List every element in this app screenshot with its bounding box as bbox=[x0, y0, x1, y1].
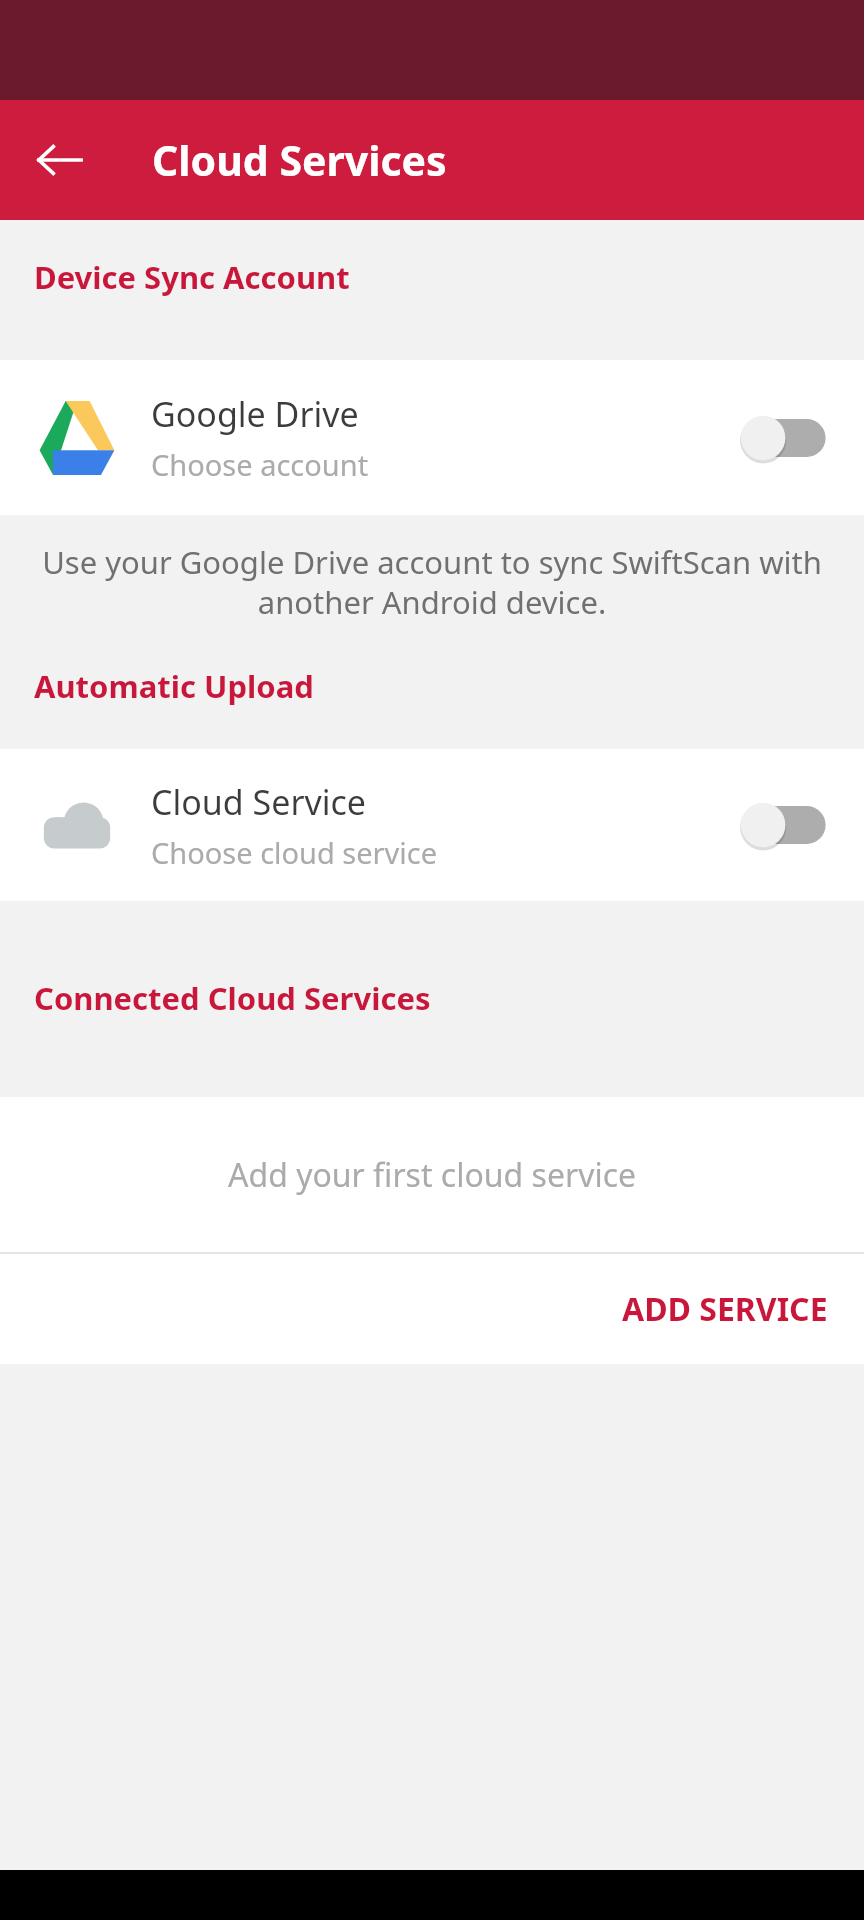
staticText: Add your first cloud service bbox=[228, 1153, 637, 1197]
button[interactable]: ADD SERVICE bbox=[600, 1271, 850, 1347]
staticText: Cloud Services bbox=[152, 132, 447, 188]
button[interactable]: Toggle bbox=[732, 783, 836, 867]
staticText: Cloud Service bbox=[151, 779, 367, 825]
staticText: Automatic Upload bbox=[34, 665, 314, 707]
button[interactable]: Toggle bbox=[732, 396, 836, 480]
staticText: Device Sync Account bbox=[34, 256, 350, 298]
button[interactable]: Google Drive bbox=[0, 360, 864, 515]
button[interactable]: Back bbox=[18, 118, 102, 202]
staticText: Connected Cloud Services bbox=[34, 977, 431, 1019]
staticText: Use your Google Drive account to sync Sw… bbox=[30, 541, 834, 623]
button[interactable]: Cloud Service bbox=[0, 749, 864, 901]
staticText: Choose account bbox=[151, 445, 369, 484]
staticText: ADD SERVICE bbox=[622, 1287, 828, 1331]
staticText: Google Drive bbox=[151, 391, 359, 437]
staticText: Choose cloud service bbox=[151, 833, 438, 872]
